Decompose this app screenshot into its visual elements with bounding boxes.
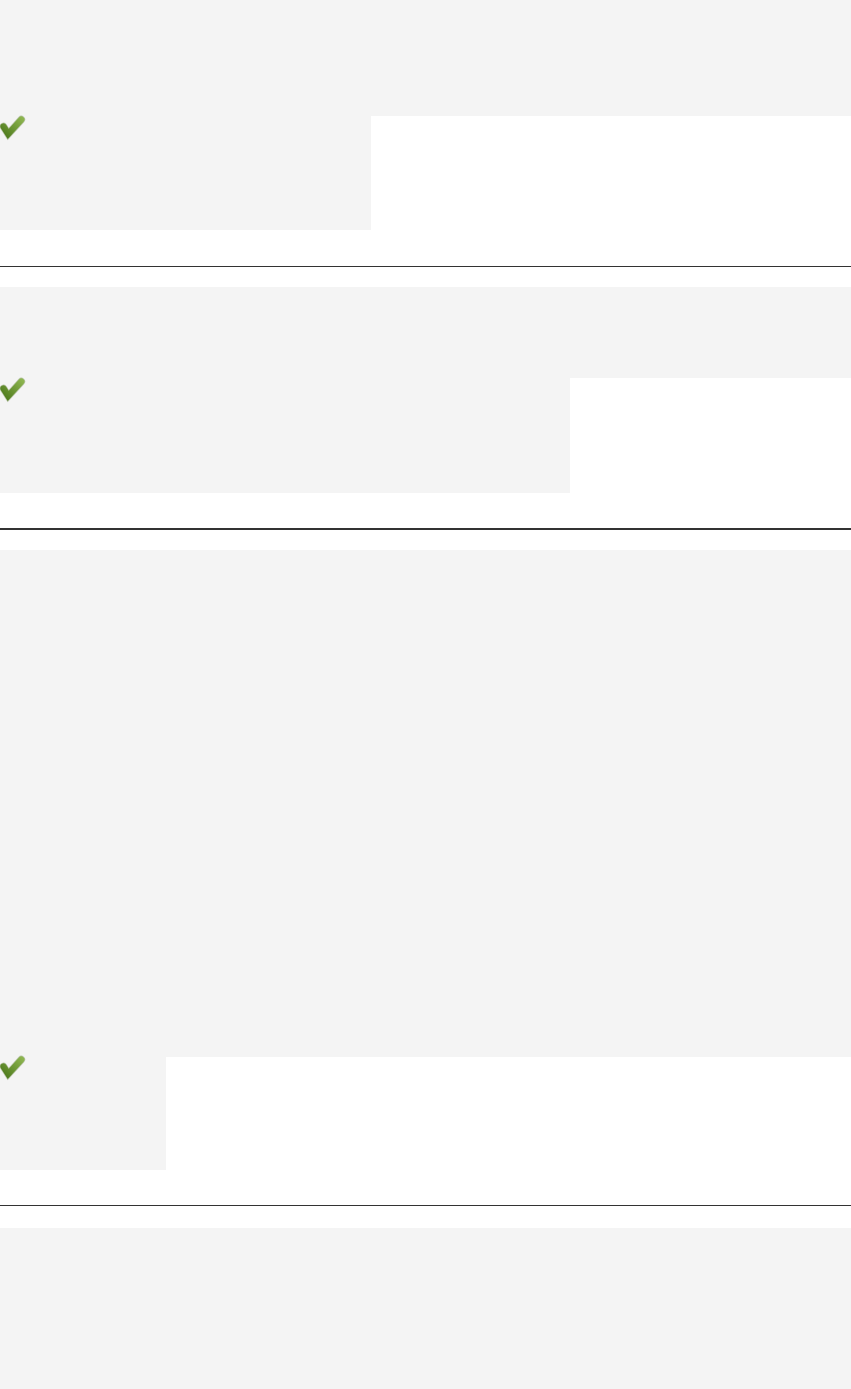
button[interactable]: Verified [0,0,851,230]
other: Verified [0,378,25,400]
button[interactable]: Verified [0,550,851,1170]
other: Verified [0,116,25,138]
other: Verified [0,1056,25,1078]
button[interactable]: Verified [0,287,851,493]
